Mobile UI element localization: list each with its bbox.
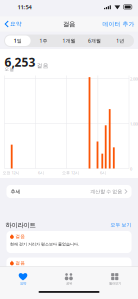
- staticText: 데이터 추가: [102, 20, 134, 28]
- staticText: 요약: [20, 281, 26, 286]
- button[interactable]: 걸음: [6, 231, 131, 253]
- staticText: 오전 12시: [2, 170, 19, 175]
- staticText: 계산할 수 없음: [90, 188, 122, 195]
- button[interactable]: 추세: [6, 185, 131, 198]
- button[interactable]: 1년: [107, 35, 133, 46]
- button[interactable]: 공유: [46, 270, 92, 288]
- staticText: 1일: [14, 37, 22, 44]
- staticText: 걸음: [63, 20, 75, 28]
- button[interactable]: 데이터 추가: [99, 16, 138, 31]
- staticText: 6개월: [88, 37, 101, 44]
- staticText: 6시: [100, 170, 106, 175]
- staticText: 요약: [10, 20, 22, 28]
- staticText: 걸음: [15, 233, 25, 239]
- staticText: 공유: [66, 281, 72, 286]
- button[interactable]: 1개월: [56, 35, 82, 46]
- staticText: 하이라이트: [5, 221, 35, 229]
- button[interactable]: 요약: [1, 16, 26, 31]
- staticText: 오후 12시: [62, 170, 79, 175]
- staticText: 걸음: [37, 62, 49, 69]
- staticText: 둘러보기: [109, 281, 121, 286]
- staticText: 걸음: [15, 260, 25, 266]
- staticText: 6,253: [4, 54, 35, 70]
- staticText: 오늘: [4, 66, 14, 72]
- staticText: 1주: [39, 37, 47, 44]
- staticText: 1,000: [130, 121, 138, 127]
- staticText: 추세: [10, 188, 20, 195]
- button[interactable]: 요약: [0, 270, 46, 288]
- staticText: 2,000: [130, 76, 138, 82]
- staticText: 0: [130, 166, 132, 172]
- staticText: 6시: [38, 170, 44, 175]
- button[interactable]: 1일: [5, 35, 31, 46]
- button[interactable]: 둘러보기: [92, 270, 138, 288]
- staticText: 현재 걷기 거리가 평소보다 줄었습니다.: [10, 241, 79, 247]
- button[interactable]: 1주: [31, 35, 56, 46]
- staticText: 11:54: [17, 3, 31, 11]
- staticText: 1개월: [62, 37, 75, 44]
- staticText: 모두 보기: [110, 222, 131, 228]
- staticText: 1년: [116, 37, 124, 44]
- button[interactable]: 걸음: [6, 257, 131, 279]
- button[interactable]: 모두 보기: [110, 222, 131, 228]
- button[interactable]: 6개월: [82, 35, 107, 46]
